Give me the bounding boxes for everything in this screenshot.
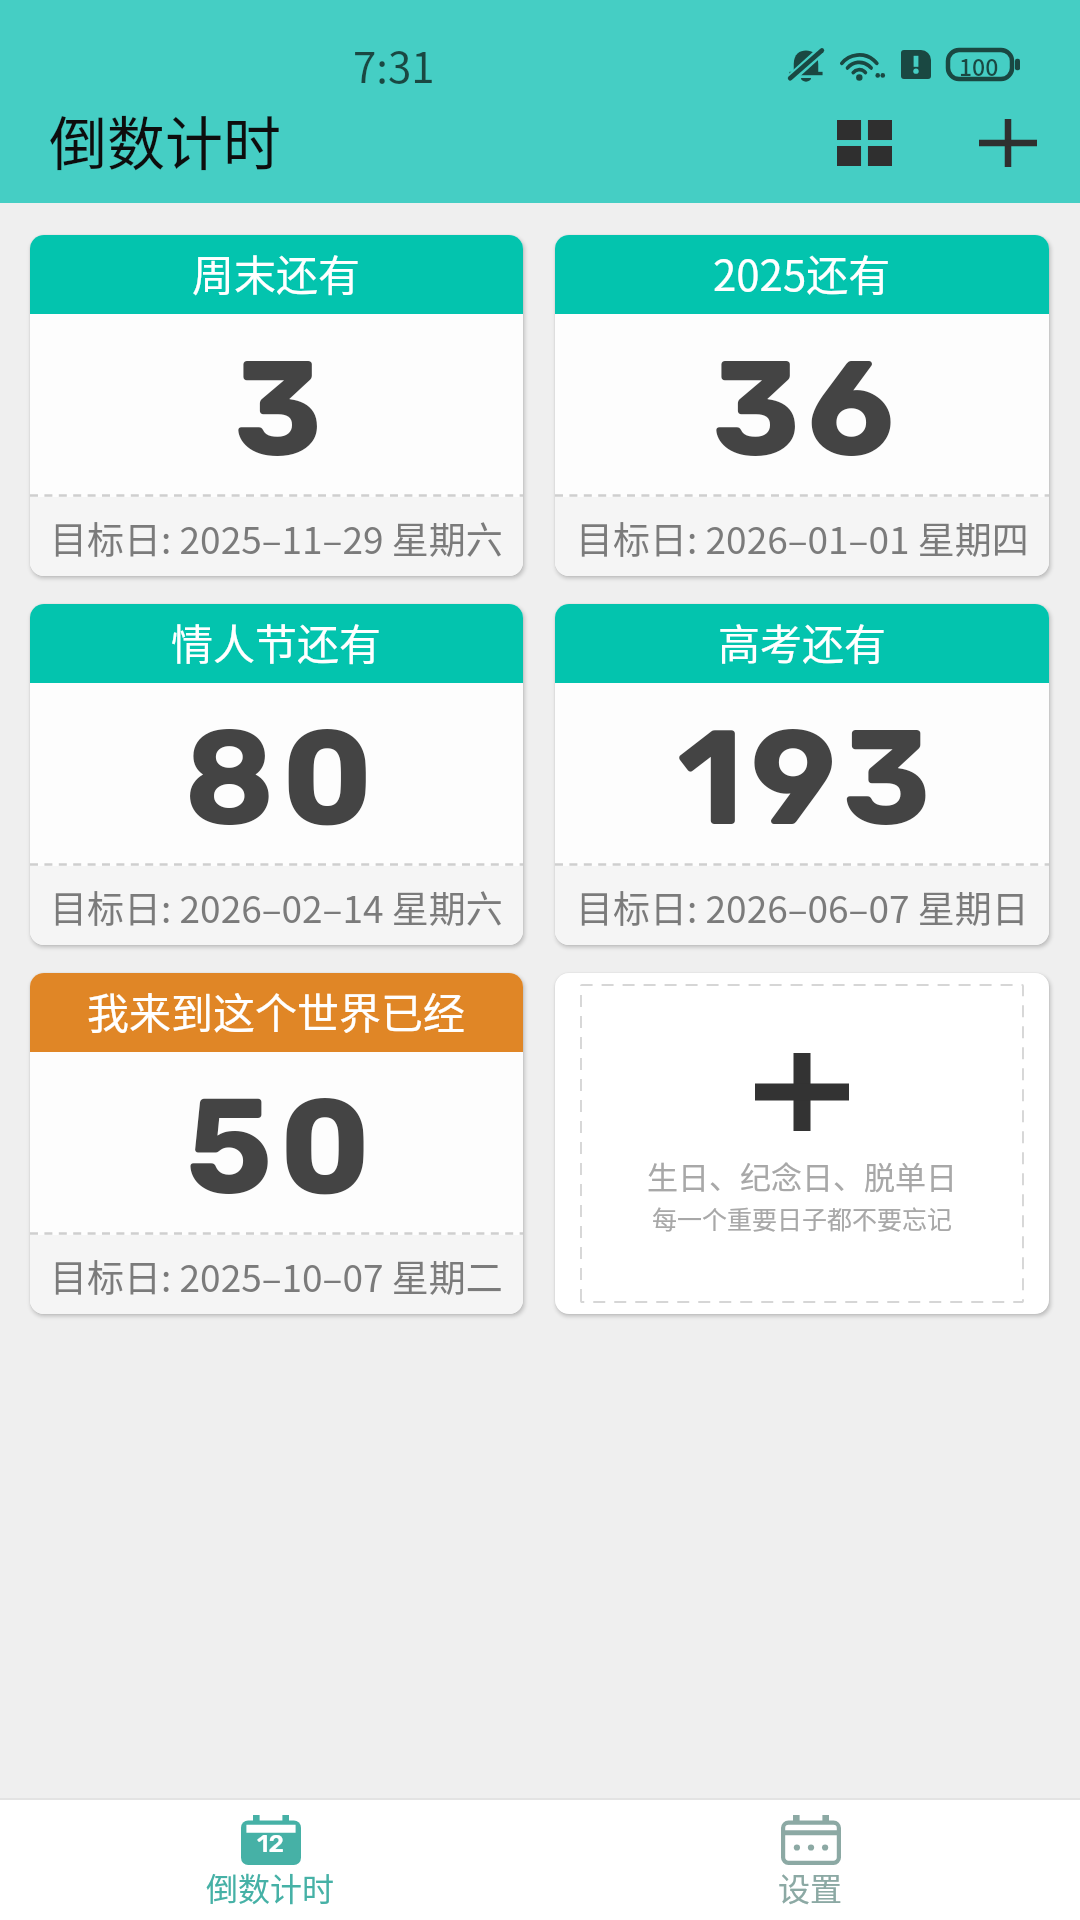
button[interactable]: 我来到这个世界已经 xyxy=(30,973,523,1314)
button[interactable]: 情人节还有 xyxy=(30,604,523,945)
staticText: 倒数计时 xyxy=(49,98,282,182)
staticText: 193 xyxy=(677,699,938,858)
button[interactable]: Grid view xyxy=(808,96,920,203)
button[interactable]: Add new countdown xyxy=(555,973,1049,1314)
staticText: 目标日: 2025–11–29 星期六 xyxy=(50,511,503,565)
staticText: 100 xyxy=(959,49,999,78)
button[interactable]: 高考还有 xyxy=(555,604,1049,945)
staticText: 目标日: 2026–01–01 星期四 xyxy=(576,511,1029,565)
staticText: 12 xyxy=(257,1829,285,1859)
staticText: 情人节还有 xyxy=(171,611,382,672)
staticText: 7:31 xyxy=(353,34,435,95)
staticText: 生日、纪念日、脱单日 xyxy=(647,1153,957,1198)
button[interactable]: 2025还有 xyxy=(555,235,1049,576)
staticText: 每一个重要日子都不要忘记 xyxy=(652,1200,953,1236)
staticText: 3 xyxy=(234,330,330,489)
button[interactable]: 12 xyxy=(0,1800,540,1920)
staticText: 80 xyxy=(184,699,380,858)
staticText: 高考还有 xyxy=(718,611,887,672)
staticText: 36 xyxy=(712,330,902,489)
staticText: 目标日: 2026–02–14 星期六 xyxy=(50,880,503,934)
staticText: 倒数计时 xyxy=(206,1864,335,1910)
button[interactable]: 周末还有 xyxy=(30,235,523,576)
staticText: 50 xyxy=(186,1068,378,1227)
staticText: 目标日: 2026–06–07 星期日 xyxy=(576,880,1029,934)
button[interactable]: 设置 xyxy=(540,1800,1080,1920)
staticText: 2025还有 xyxy=(713,242,891,303)
button[interactable]: Add countdown xyxy=(952,96,1064,203)
staticText: 目标日: 2025–10–07 星期二 xyxy=(50,1249,503,1303)
staticText: 设置 xyxy=(778,1864,843,1910)
staticText: 周末还有 xyxy=(192,242,361,303)
staticText: 我来到这个世界已经 xyxy=(87,980,466,1041)
